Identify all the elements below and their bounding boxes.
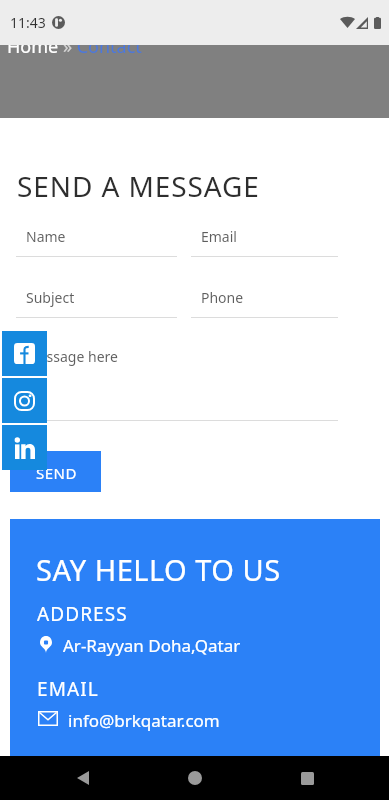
staticText: ADDRESS xyxy=(37,601,128,627)
button[interactable]: Name xyxy=(16,216,177,257)
staticText: Subject xyxy=(26,288,75,307)
button[interactable]: Phone xyxy=(191,277,338,318)
button[interactable]: Subject xyxy=(16,277,177,318)
staticText: Message here xyxy=(26,347,118,366)
button[interactable]: Instagram xyxy=(2,378,47,423)
staticText: Home » Contact xyxy=(7,34,142,59)
button[interactable]: Facebook xyxy=(2,331,47,376)
button[interactable]: LinkedIn xyxy=(2,425,47,470)
staticText: SEND xyxy=(36,463,77,483)
staticText: info@brkqatar.com xyxy=(68,709,220,732)
button[interactable]: Email xyxy=(191,216,338,257)
button[interactable]: SEND xyxy=(10,451,101,492)
staticText: SAY HELLO TO US xyxy=(36,550,281,589)
staticText: EMAIL xyxy=(37,676,99,702)
staticText: Email xyxy=(201,227,237,246)
button[interactable]: Back xyxy=(70,765,96,791)
button[interactable]: Recent apps xyxy=(294,765,320,791)
button[interactable]: Home xyxy=(182,765,208,791)
staticText: Phone xyxy=(201,288,244,307)
staticText: 11:43 xyxy=(10,13,46,32)
staticText: Name xyxy=(26,227,66,246)
staticText: Ar-Rayyan Doha,Qatar xyxy=(63,634,241,657)
staticText: SEND A MESSAGE xyxy=(17,167,260,205)
